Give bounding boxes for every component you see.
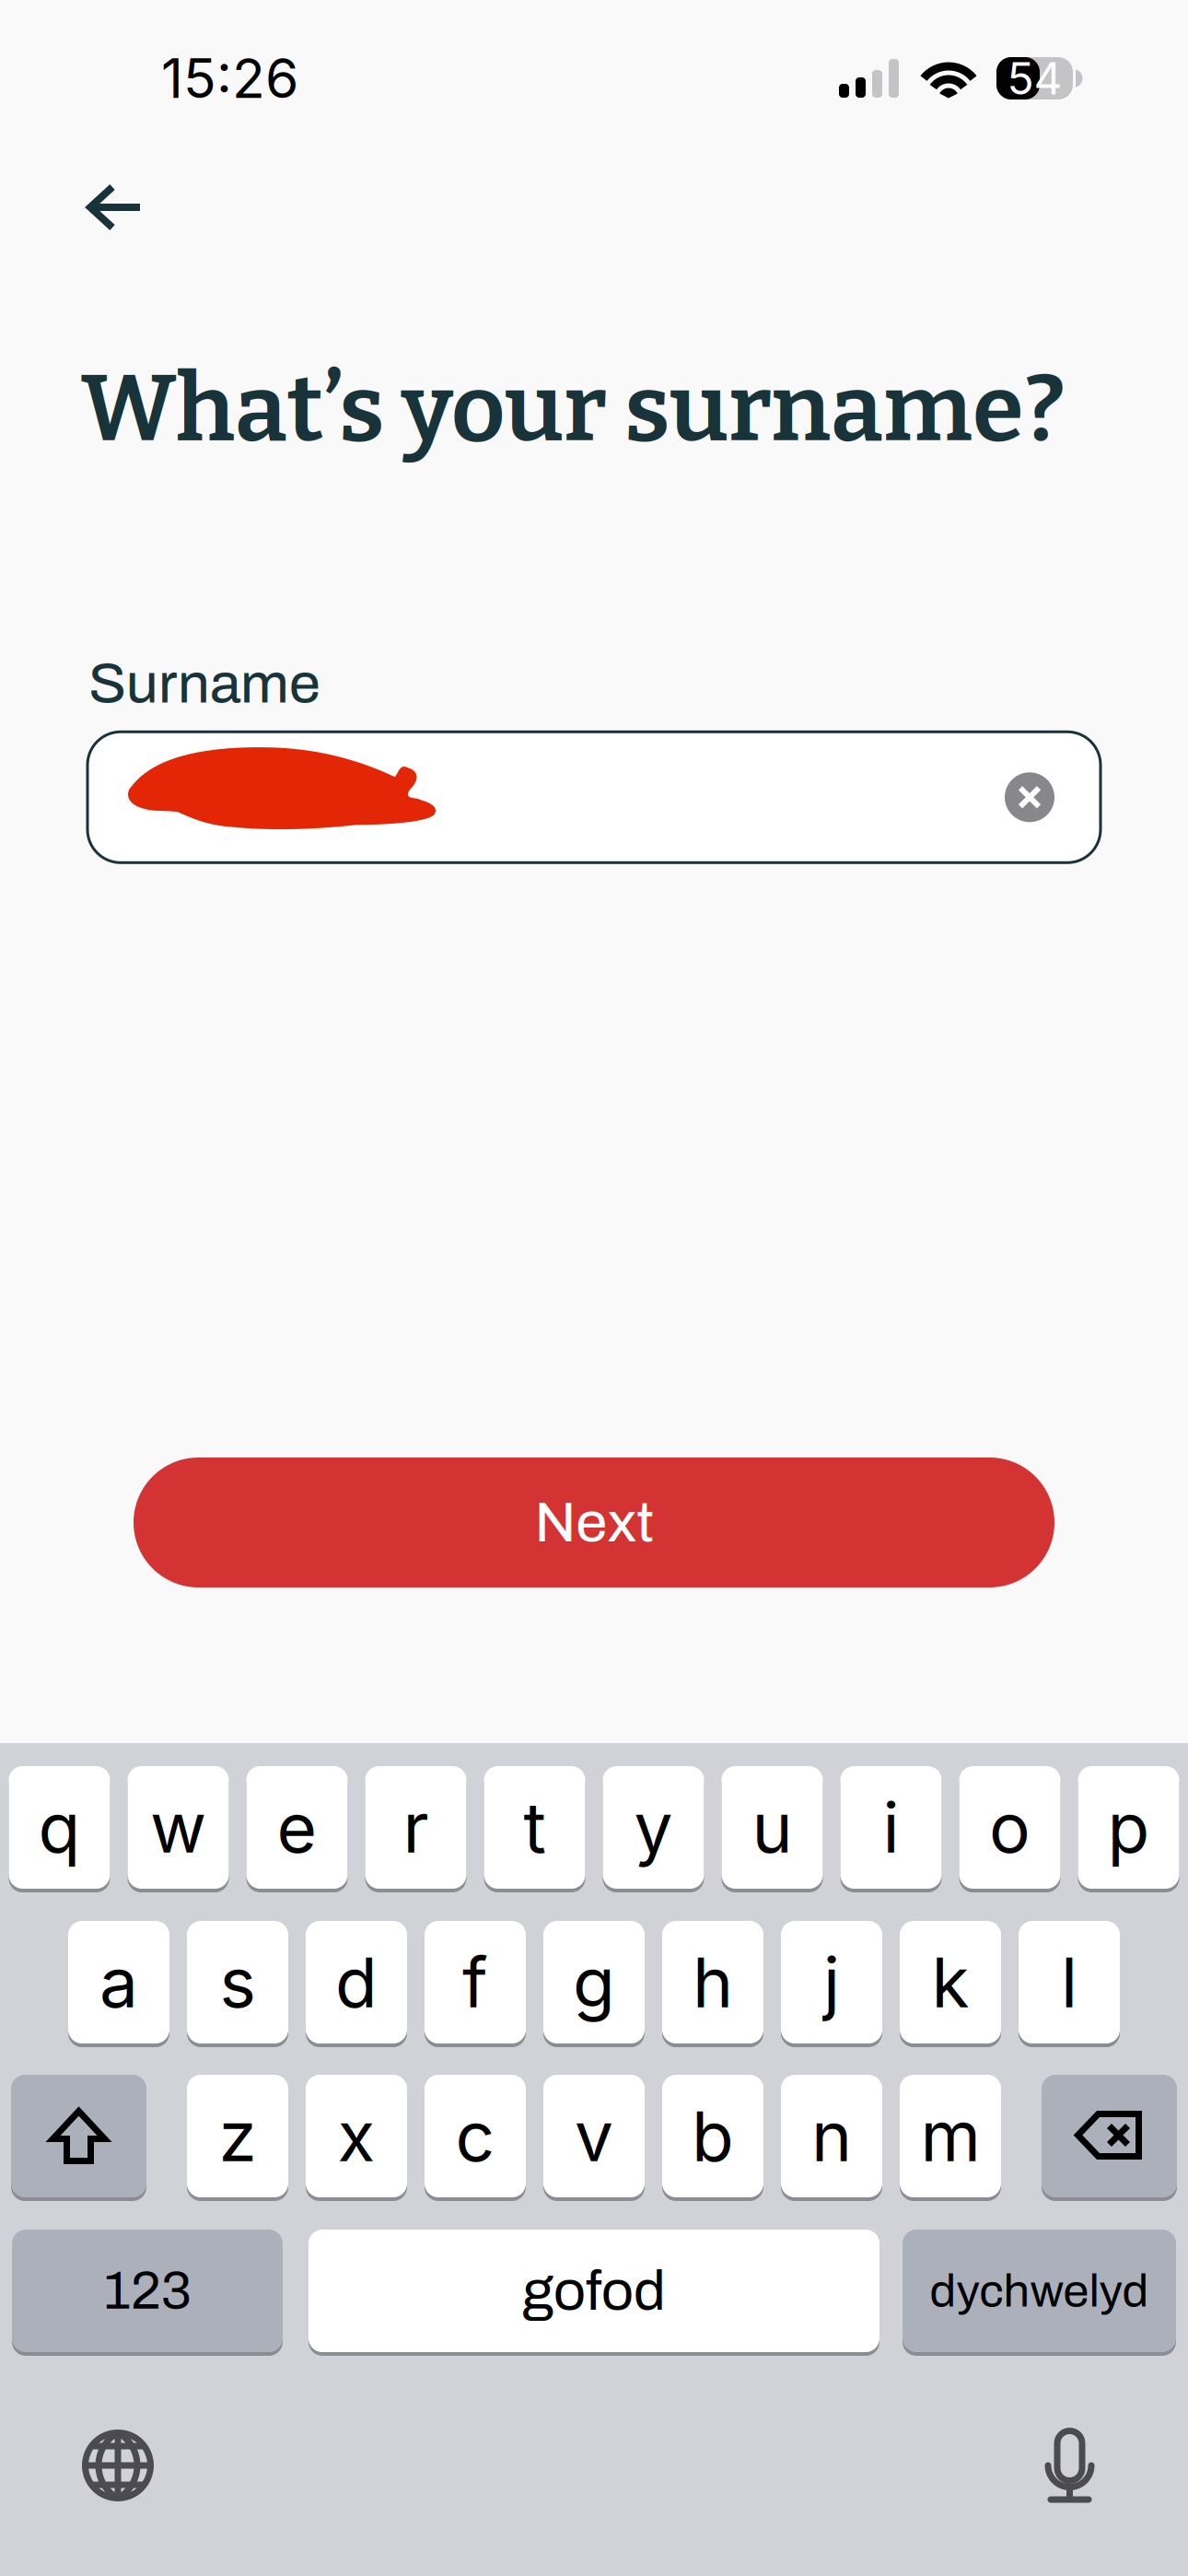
staticText: q bbox=[38, 1786, 81, 1869]
staticText: 54 bbox=[1007, 52, 1062, 105]
button[interactable]: i bbox=[840, 1764, 942, 1891]
staticText: o bbox=[989, 1786, 1031, 1869]
staticText: v bbox=[575, 2094, 613, 2178]
staticText: n bbox=[811, 2094, 852, 2178]
button[interactable]: g bbox=[543, 1919, 645, 2045]
staticText: r bbox=[403, 1786, 429, 1869]
button[interactable]: 123 bbox=[12, 2228, 283, 2354]
staticText: a bbox=[99, 1941, 138, 2024]
staticText: b bbox=[692, 2094, 734, 2178]
button[interactable]: z bbox=[187, 2073, 288, 2199]
button[interactable]: Change keyboard language bbox=[0, 2397, 191, 2538]
staticText: 15:26 bbox=[161, 46, 298, 111]
button[interactable]: u bbox=[722, 1764, 823, 1891]
staticText: c bbox=[455, 2094, 495, 2178]
staticText: 123 bbox=[103, 2262, 192, 2320]
button[interactable]: Clear text bbox=[985, 747, 1074, 848]
button[interactable]: dychwelyd bbox=[903, 2228, 1176, 2354]
staticText: s bbox=[220, 1941, 256, 2024]
button[interactable]: w bbox=[128, 1764, 229, 1891]
staticText: gofod bbox=[522, 2260, 666, 2322]
button[interactable]: Delete bbox=[1042, 2073, 1177, 2199]
button[interactable]: f bbox=[425, 1919, 526, 2045]
staticText: l bbox=[1061, 1941, 1077, 2024]
staticText: h bbox=[693, 1941, 733, 2024]
staticText: d bbox=[335, 1941, 378, 2024]
button[interactable]: Next bbox=[134, 1458, 1054, 1587]
button[interactable]: h bbox=[662, 1919, 763, 2045]
button[interactable]: o bbox=[959, 1764, 1060, 1891]
button[interactable]: e bbox=[246, 1764, 348, 1891]
button[interactable]: b bbox=[662, 2073, 763, 2199]
button[interactable]: q bbox=[9, 1764, 110, 1891]
staticText: y bbox=[634, 1786, 673, 1869]
button[interactable]: p bbox=[1078, 1764, 1179, 1891]
button[interactable]: a bbox=[68, 1919, 169, 2045]
button[interactable]: j bbox=[781, 1919, 882, 2045]
button[interactable]: l bbox=[1019, 1919, 1120, 2045]
staticText: z bbox=[219, 2094, 256, 2178]
button[interactable]: Back bbox=[0, 101, 199, 266]
staticText: m bbox=[920, 2094, 980, 2178]
staticText: p bbox=[1107, 1786, 1150, 1869]
button[interactable]: m bbox=[900, 2073, 1001, 2199]
staticText: e bbox=[277, 1786, 317, 1869]
button[interactable]: t bbox=[484, 1764, 585, 1891]
button[interactable]: c bbox=[425, 2073, 526, 2199]
staticText: g bbox=[573, 1941, 615, 2024]
staticText: k bbox=[932, 1941, 969, 2024]
staticText: w bbox=[150, 1786, 206, 1869]
button[interactable]: d bbox=[306, 1919, 407, 2045]
button[interactable]: Dictate bbox=[1008, 2396, 1188, 2539]
button[interactable]: y bbox=[603, 1764, 704, 1891]
staticText: u bbox=[752, 1786, 792, 1869]
staticText: Surname bbox=[88, 653, 320, 714]
staticText: t bbox=[524, 1786, 546, 1869]
staticText: Next bbox=[535, 1492, 653, 1553]
button[interactable]: gofod bbox=[309, 2228, 879, 2354]
staticText: f bbox=[462, 1941, 488, 2024]
staticText: j bbox=[823, 1941, 840, 2024]
button[interactable]: v bbox=[543, 2073, 645, 2199]
staticText: i bbox=[883, 1786, 899, 1869]
button[interactable]: n bbox=[781, 2073, 882, 2199]
button[interactable]: Shift bbox=[11, 2073, 146, 2199]
staticText: What’s your surname? bbox=[81, 353, 1066, 465]
button[interactable]: k bbox=[900, 1919, 1001, 2045]
staticText: dychwelyd bbox=[930, 2265, 1149, 2316]
staticText: x bbox=[338, 2094, 375, 2178]
button[interactable]: x bbox=[306, 2073, 407, 2199]
button[interactable]: r bbox=[365, 1764, 466, 1891]
button[interactable]: s bbox=[187, 1919, 288, 2045]
